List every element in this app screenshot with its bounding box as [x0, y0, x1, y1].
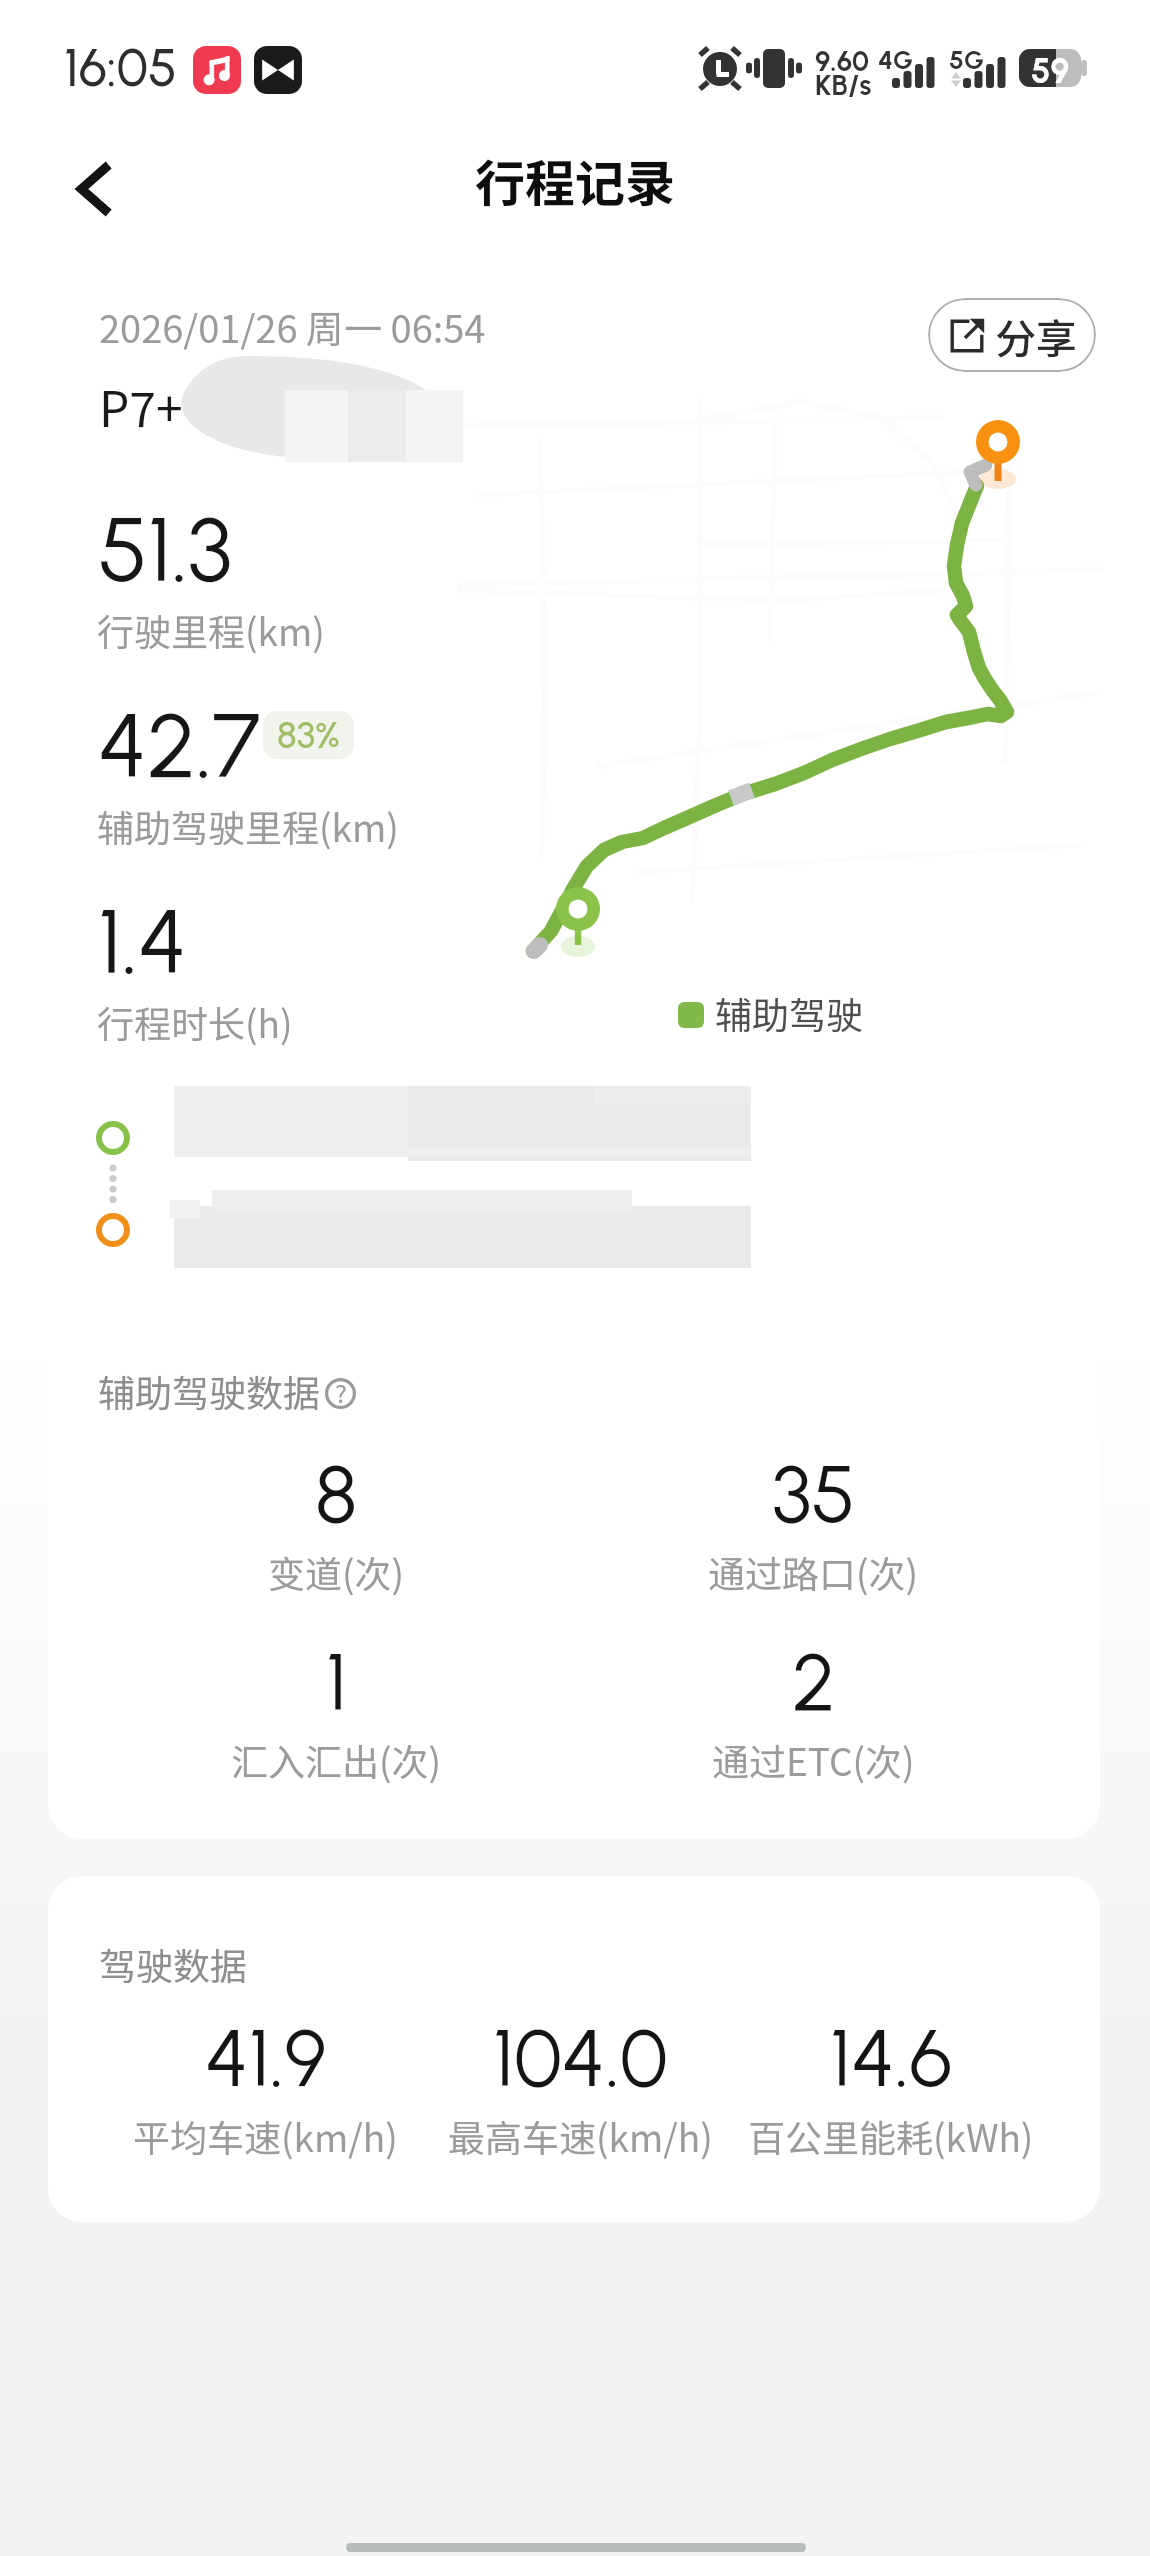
staticText: 42.7: [98, 691, 261, 799]
button[interactable]: Start location: [90, 1086, 760, 1166]
staticText: 2: [792, 1634, 836, 1730]
staticText: 35: [772, 1446, 856, 1542]
staticText: 辅助驾驶数据: [98, 1364, 320, 1418]
staticText: KB/s: [815, 68, 872, 102]
staticText: 辅助驾驶里程(km): [97, 799, 399, 853]
staticText: 百公里能耗(kWh): [748, 2109, 1034, 2163]
staticText: 通过ETC(次): [712, 1733, 915, 1787]
button[interactable]: Back: [48, 142, 142, 236]
staticText: 9.60: [815, 44, 869, 78]
staticText: 1: [326, 1634, 348, 1730]
button[interactable]: End location: [90, 1190, 760, 1270]
button[interactable]: About assisted driving data: [325, 1373, 356, 1409]
staticText: ?: [335, 1374, 347, 1410]
staticText: 2026/01/26 周一 06:54: [99, 299, 486, 354]
staticText: 变道(次): [268, 1545, 405, 1599]
staticText: P7+: [99, 371, 183, 441]
staticText: 41.9: [205, 2010, 327, 2106]
staticText: 最高车速(km/h): [448, 2109, 713, 2163]
staticText: 83%: [277, 713, 340, 757]
staticText: 14.6: [830, 2010, 953, 2106]
staticText: 59: [1031, 51, 1070, 92]
staticText: 辅助驾驶: [715, 986, 863, 1040]
staticText: 行程记录: [475, 144, 675, 216]
staticText: it30: [318, 362, 400, 429]
staticText: 附近阳光花园: [176, 1216, 416, 1274]
staticText: 8: [315, 1446, 358, 1542]
staticText: 1.4: [98, 887, 188, 995]
button[interactable]: Trip route map: [460, 390, 1100, 970]
staticText: 51.3: [98, 495, 233, 603]
staticText: 16:05: [64, 37, 177, 99]
staticText: 4G: [878, 44, 914, 75]
staticText: 汇入汇出(次): [231, 1733, 442, 1787]
staticText: 104.0: [493, 2010, 668, 2106]
button[interactable]: 分享: [928, 298, 1096, 372]
staticText: 行程时长(h): [97, 995, 293, 1049]
staticText: 5G: [949, 44, 984, 75]
staticText: 通过路口(次): [708, 1545, 919, 1599]
staticText: 分享: [995, 306, 1077, 365]
staticText: 驾驶数据: [99, 1937, 247, 1991]
staticText: 南山口停车场: [434, 1110, 674, 1168]
staticText: 行驶里程(km): [97, 603, 325, 657]
staticText: 平均车速(km/h): [133, 2109, 398, 2163]
